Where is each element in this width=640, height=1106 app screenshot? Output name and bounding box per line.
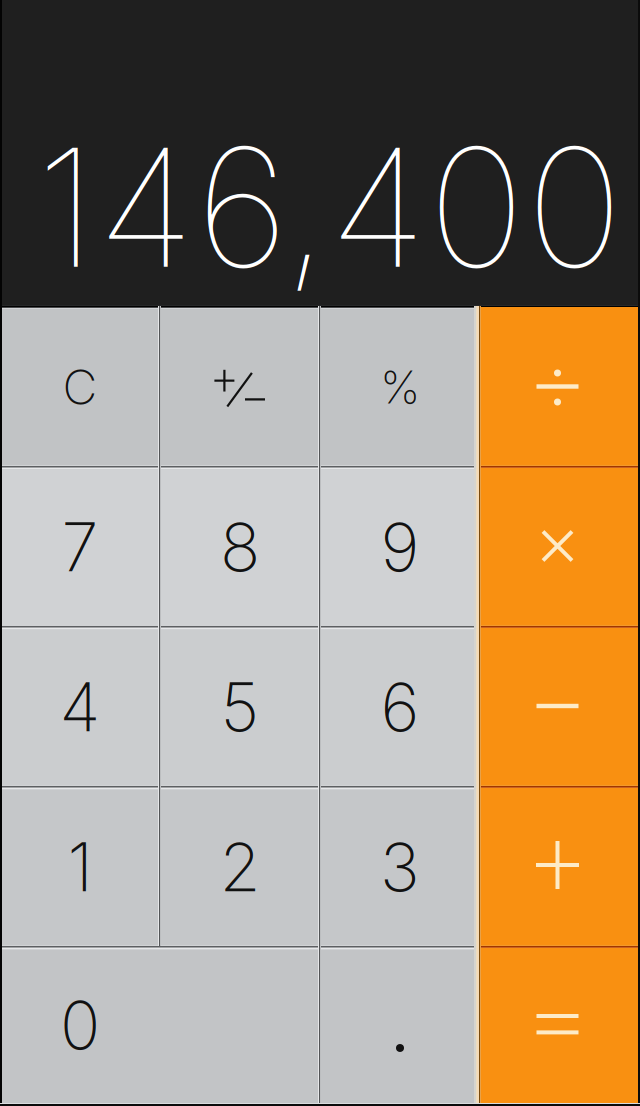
staticText: 6 [380,667,419,747]
button[interactable]: 5 [160,626,320,786]
staticText: 1 [67,827,92,907]
button[interactable]: Equals [479,946,640,1106]
staticText: 146,400 [36,108,623,306]
staticText: 3 [380,827,420,907]
button[interactable]: Multiply [479,466,640,626]
button[interactable]: Minus [479,626,640,786]
staticText: 7 [61,507,98,587]
button[interactable]: % [320,306,480,466]
button[interactable]: Decimal point [320,946,480,1106]
button[interactable]: 4 [0,626,160,786]
button[interactable]: 8 [160,466,320,626]
staticText: 5 [220,667,259,747]
staticText: C [62,358,97,416]
button[interactable]: 7 [0,466,160,626]
button[interactable]: 9 [320,466,480,626]
staticText: 0 [60,985,100,1065]
button[interactable]: 1 [0,786,160,946]
staticText: 4 [59,667,100,747]
button[interactable]: 6 [320,626,480,786]
staticText: 2 [219,827,260,907]
button[interactable]: Divide [479,306,640,466]
button[interactable]: 2 [160,786,320,946]
button[interactable]: Toggle sign [160,306,320,466]
button[interactable]: 0 [0,946,320,1106]
staticText: 8 [220,507,260,587]
staticText: % [380,360,420,414]
button[interactable]: C [0,306,160,466]
button[interactable]: Plus [479,786,640,946]
staticText: 9 [380,507,419,587]
button[interactable]: 3 [320,786,480,946]
